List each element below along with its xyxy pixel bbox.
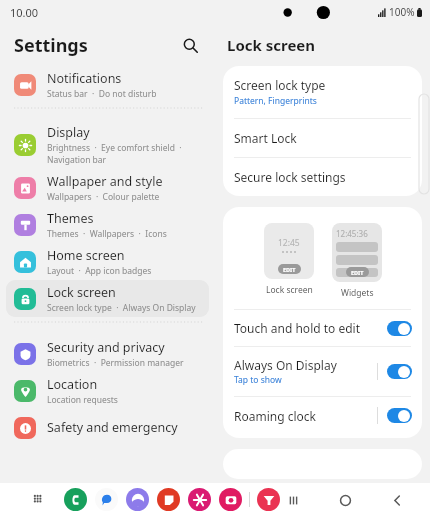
button[interactable]: Smart Lock (223, 119, 422, 157)
staticText: Pattern, Fingerprints (234, 95, 317, 107)
button[interactable]: 12:45 (264, 223, 314, 279)
staticText: Brightness · Eye comfort shield · (47, 142, 182, 154)
staticText: Secure lock settings (234, 169, 346, 185)
staticText: Lock screen (227, 35, 316, 55)
button[interactable]: Messages (95, 488, 118, 511)
staticText: 12:45 (278, 237, 300, 249)
button[interactable]: Camera (219, 488, 242, 511)
button[interactable]: Recents (280, 487, 306, 513)
staticText: Themes (47, 210, 94, 227)
staticText: Wallpaper and style (47, 173, 163, 190)
staticText: Themes · Wallpapers · Icons (47, 228, 167, 240)
button[interactable]: Screen lock type (223, 66, 422, 118)
button[interactable]: Notes (157, 488, 180, 511)
button[interactable]: Themes (6, 206, 209, 243)
staticText: Notifications (47, 70, 122, 87)
staticText: Security and privacy (47, 339, 165, 356)
button[interactable]: All apps (28, 489, 50, 511)
staticText: Screen lock type (234, 77, 326, 93)
button[interactable]: Toggle Always On Display (387, 364, 412, 379)
staticText: Lock screen (266, 284, 313, 296)
staticText: Widgets (341, 287, 374, 299)
staticText: 100% (389, 5, 415, 19)
button[interactable]: Toggle Roaming clock (387, 408, 412, 423)
staticText: 12:45:36 (336, 228, 368, 239)
button[interactable]: Internet (126, 488, 149, 511)
button[interactable]: Safety and emergency (6, 409, 209, 446)
staticText: Display (47, 124, 90, 141)
button[interactable]: Notifications (6, 66, 209, 103)
staticText: Wallpapers · Colour palette (47, 191, 160, 203)
staticText: Touch and hold to edit (234, 320, 361, 336)
button[interactable]: Secure lock settings (223, 158, 422, 196)
staticText: Settings (14, 33, 88, 58)
staticText: EDIT (283, 266, 296, 273)
staticText: Home screen (47, 247, 125, 264)
button[interactable]: Gallery (188, 488, 211, 511)
button[interactable]: Security and privacy (6, 335, 209, 372)
button[interactable]: Home screen (6, 243, 209, 280)
button[interactable]: Phone (64, 488, 87, 511)
staticText: Safety and emergency (47, 419, 178, 436)
button[interactable]: Always On Display (223, 347, 422, 396)
button[interactable]: EDIT (278, 264, 301, 274)
button[interactable]: Lock screen (6, 280, 209, 317)
button[interactable]: Location (6, 372, 209, 409)
button[interactable]: Display (6, 121, 209, 169)
staticText: Always On Display (234, 357, 337, 373)
button[interactable]: Back (384, 487, 410, 513)
staticText: Roaming clock (234, 408, 316, 424)
staticText: Layout · App icon badges (47, 265, 152, 277)
staticText: EDIT (351, 269, 364, 276)
button[interactable]: Toggle Touch and hold to edit (387, 321, 412, 336)
staticText: Navigation bar (47, 154, 107, 166)
staticText: 10.00 (10, 5, 39, 20)
staticText: Location requests (47, 394, 118, 406)
button[interactable]: Search (175, 30, 205, 60)
button[interactable]: Home (332, 487, 358, 513)
staticText: Location (47, 376, 98, 393)
button[interactable]: Touch and hold to edit (223, 310, 422, 346)
staticText: Biometrics · Permission manager (47, 357, 184, 369)
staticText: Status bar · Do not disturb (47, 88, 157, 100)
button[interactable]: Recent app (257, 488, 280, 511)
button[interactable]: EDIT (346, 267, 369, 277)
button[interactable]: 12:45:36 (332, 223, 382, 282)
staticText: Tap to show (234, 374, 282, 386)
button[interactable]: Roaming clock (223, 397, 422, 434)
button[interactable]: Wallpaper and style (6, 169, 209, 206)
staticText: Lock screen (47, 284, 116, 301)
staticText: Smart Lock (234, 130, 297, 146)
staticText: Screen lock type · Always On Display (47, 302, 196, 314)
